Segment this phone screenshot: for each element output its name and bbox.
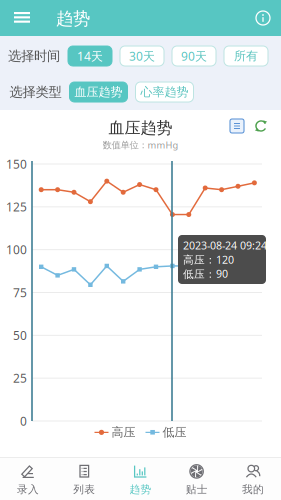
staticText: 高压: [111, 425, 135, 440]
staticText: 列表: [73, 483, 95, 496]
staticText: 血压趋势: [74, 85, 122, 99]
staticText: 录入: [17, 483, 39, 496]
staticText: 150: [6, 156, 27, 172]
staticText: 高压：120: [183, 252, 234, 267]
staticText: 2023-08-24 09:24: [183, 238, 267, 252]
staticText: 贴士: [186, 483, 208, 496]
button[interactable]: Menu: [0, 0, 44, 35]
staticText: 30天: [129, 48, 155, 64]
button[interactable]: 所有: [224, 46, 268, 66]
staticText: 血压趋势: [108, 118, 172, 138]
staticText: 50: [13, 327, 27, 343]
button[interactable]: 我的: [225, 457, 281, 500]
staticText: 125: [6, 199, 27, 215]
button[interactable]: Info: [245, 0, 281, 36]
staticText: 100: [6, 242, 27, 258]
button[interactable]: 贴士: [169, 457, 225, 500]
staticText: 0: [20, 413, 27, 429]
staticText: 90天: [181, 48, 207, 64]
staticText: 75: [13, 284, 27, 300]
staticText: 趋势: [129, 483, 151, 496]
button[interactable]: Refresh: [249, 114, 273, 138]
staticText: 低压: [162, 425, 186, 440]
button[interactable]: 90天: [172, 46, 216, 66]
button[interactable]: Records: [225, 114, 249, 138]
button[interactable]: 趋势: [112, 457, 169, 500]
button[interactable]: 30天: [120, 46, 164, 66]
staticText: 低压：90: [183, 267, 228, 281]
staticText: 14天: [77, 48, 103, 64]
staticText: 数值单位：mmHg: [102, 139, 178, 151]
button[interactable]: 血压趋势: [69, 82, 127, 102]
staticText: 选择时间: [8, 48, 60, 64]
staticText: 选择类型: [9, 84, 61, 100]
staticText: 25: [13, 370, 27, 386]
staticText: 所有: [234, 49, 258, 63]
button[interactable]: 列表: [56, 457, 112, 500]
button[interactable]: 心率趋势: [135, 82, 193, 102]
button[interactable]: 14天: [68, 46, 112, 66]
button[interactable]: 录入: [0, 457, 56, 500]
staticText: 我的: [242, 483, 264, 496]
staticText: 趋势: [56, 8, 90, 29]
staticText: 心率趋势: [140, 85, 188, 99]
